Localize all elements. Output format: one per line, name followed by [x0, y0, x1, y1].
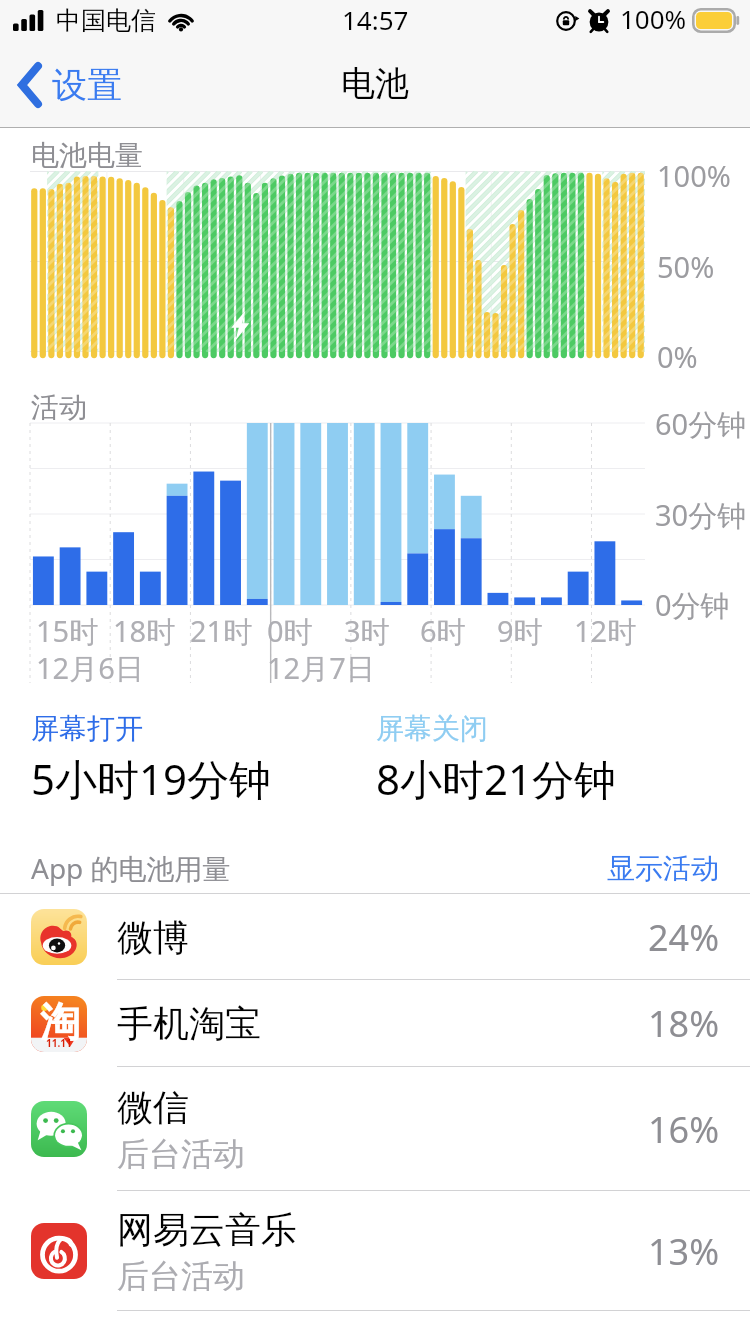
button[interactable]: 显示活动 — [607, 851, 719, 886]
staticText: 后台活动 — [117, 1256, 245, 1296]
staticText: 手机淘宝 — [117, 1001, 261, 1046]
staticText: 9时 — [497, 611, 543, 651]
staticText: 5小时19分钟 — [31, 750, 272, 807]
staticText: 后台活动 — [117, 1134, 245, 1174]
staticText: 电池电量 — [31, 138, 143, 173]
staticText: 100% — [657, 156, 731, 195]
staticText: 6时 — [420, 611, 466, 651]
button[interactable]: 淘 — [0, 980, 750, 1067]
staticText: 18时 — [113, 611, 176, 651]
staticText: 8小时21分钟 — [376, 750, 617, 807]
staticText: 屏幕打开 — [31, 711, 143, 746]
staticText: 屏幕关闭 — [376, 711, 488, 746]
staticText: 14:57 — [342, 2, 409, 37]
staticText: 0% — [657, 337, 698, 376]
other: Back — [18, 62, 42, 108]
staticText: 13% — [648, 1227, 720, 1276]
button[interactable]: 微信 — [0, 1067, 750, 1191]
staticText: 16% — [648, 1105, 720, 1154]
other: Alarm — [588, 10, 610, 32]
staticText: 0时 — [267, 611, 313, 651]
staticText: 活动 — [31, 390, 87, 425]
staticText: 12月6日 — [36, 648, 144, 688]
staticText: 12月7日 — [267, 648, 375, 688]
staticText: 15时 — [36, 611, 99, 651]
staticText: App 的电池用量 — [31, 849, 231, 887]
staticText: 50% — [657, 247, 715, 286]
staticText: 12时 — [574, 611, 637, 651]
staticText: 网易云音乐 — [117, 1207, 297, 1252]
staticText: 3时 — [344, 611, 390, 651]
button[interactable]: 网易云音乐 — [0, 1191, 750, 1311]
staticText: 100% — [620, 1, 687, 36]
button[interactable]: 微博 — [0, 894, 750, 980]
staticText: 60分钟 — [655, 404, 747, 444]
staticText: 微博 — [117, 915, 189, 960]
staticText: 24% — [648, 913, 720, 962]
staticText: 微信 — [117, 1085, 189, 1130]
staticText: 30分钟 — [655, 495, 747, 535]
staticText: 21时 — [190, 611, 253, 651]
staticText: 设置 — [52, 63, 122, 107]
staticText: 电池 — [341, 62, 409, 105]
staticText: 18% — [648, 999, 720, 1048]
staticText: 淘 — [40, 997, 80, 1047]
staticText: 中国电信 — [56, 5, 156, 36]
button[interactable]: Back — [0, 42, 140, 128]
staticText: 0分钟 — [655, 585, 730, 625]
staticText: 11.11 — [46, 1036, 72, 1050]
